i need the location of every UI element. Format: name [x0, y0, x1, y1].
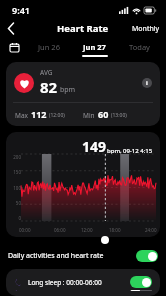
- staticText: 100: [8, 185, 21, 191]
- staticText: Heart Rate: [57, 22, 109, 35]
- staticText: 60: [98, 108, 109, 120]
- staticText: Today: [129, 42, 150, 52]
- staticText: 200: [8, 154, 21, 160]
- button[interactable]: Long sleep : 00:00-06:00: [14, 274, 152, 290]
- staticText: 9:41: [12, 4, 30, 16]
- button[interactable]: Jun 27: [72, 37, 117, 57]
- staticText: (12:00): [49, 112, 65, 119]
- staticText: bpm,: [107, 147, 122, 155]
- button[interactable]: AVG: [6, 62, 160, 126]
- staticText: Monthly: [132, 24, 160, 34]
- button[interactable]: Scrub: [101, 236, 109, 244]
- button[interactable]: Monthly: [132, 24, 160, 34]
- button[interactable]: Calendar: [7, 40, 21, 54]
- staticText: 00:00: [19, 227, 31, 233]
- button[interactable]: Toggle on: [130, 276, 152, 288]
- staticText: 06:00: [54, 227, 66, 233]
- staticText: bpm: [60, 85, 76, 95]
- staticText: 09-12 4:15: [123, 147, 153, 155]
- staticText: 150: [8, 169, 21, 175]
- button[interactable]: Jun 26: [26, 37, 72, 57]
- button[interactable]: Toggle off: [130, 290, 152, 291]
- button[interactable]: 149: [6, 132, 160, 237]
- staticText: 12:00: [81, 227, 93, 233]
- staticText: 149: [82, 137, 107, 156]
- staticText: 18:00: [109, 227, 121, 233]
- button[interactable]: Back: [0, 20, 22, 37]
- staticText: Jun 26: [38, 42, 60, 52]
- staticText: Long sleep : 00:00-06:00: [28, 278, 102, 287]
- staticText: Min: [83, 111, 95, 120]
- staticText: Jun 27: [83, 42, 106, 52]
- button[interactable]: Daily activities and heart rate: [8, 248, 158, 264]
- staticText: 24:00: [145, 227, 157, 233]
- staticText: 112: [31, 108, 47, 120]
- button[interactable]: Info: [142, 78, 152, 88]
- staticText: 50: [8, 200, 21, 206]
- staticText: Daily activities and heart rate: [8, 251, 104, 261]
- staticText: 0: [8, 215, 21, 221]
- staticText: i: [146, 79, 148, 87]
- staticText: Max: [15, 111, 28, 120]
- staticText: (13:00): [111, 112, 127, 119]
- staticText: AVG: [40, 68, 53, 77]
- button[interactable]: Toggle on: [136, 250, 158, 262]
- button[interactable]: Today: [117, 37, 162, 57]
- button[interactable]: Nap : 13:00-15:00: [14, 290, 152, 291]
- staticText: 82: [40, 77, 58, 97]
